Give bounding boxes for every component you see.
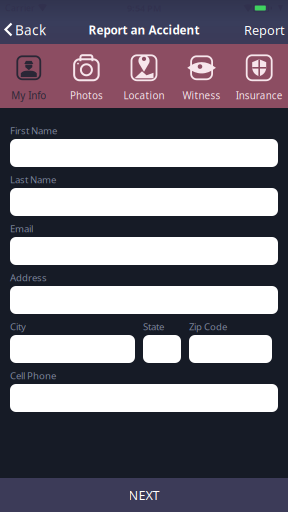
button[interactable]: Location [115, 44, 173, 108]
button[interactable]: My Info [0, 44, 58, 108]
staticText: Email [10, 222, 33, 235]
button[interactable]: Insurance [230, 44, 288, 108]
button[interactable]: Photos [58, 44, 115, 108]
staticText: Cell Phone [10, 369, 56, 382]
staticText: Witness [183, 89, 221, 102]
staticText: Insurance [236, 89, 283, 102]
staticText: City [10, 320, 26, 333]
staticText: Photos [70, 89, 103, 102]
button[interactable]: Back [0, 16, 46, 44]
staticText: First Name [10, 124, 57, 137]
staticText: Last Name [10, 173, 56, 186]
button[interactable]: Witness [173, 44, 230, 108]
staticText: My Info [11, 89, 46, 102]
staticText: NEXT [128, 486, 159, 504]
staticText: Back [15, 21, 46, 39]
staticText: Zip Code [189, 320, 227, 333]
staticText: Address [10, 271, 47, 284]
button[interactable]: Report [244, 16, 288, 44]
staticText: Report an Accident [88, 22, 199, 38]
staticText: State [143, 320, 164, 333]
staticText: Location [123, 89, 164, 102]
staticText: Report [244, 21, 285, 39]
button[interactable]: NEXT [0, 478, 288, 512]
